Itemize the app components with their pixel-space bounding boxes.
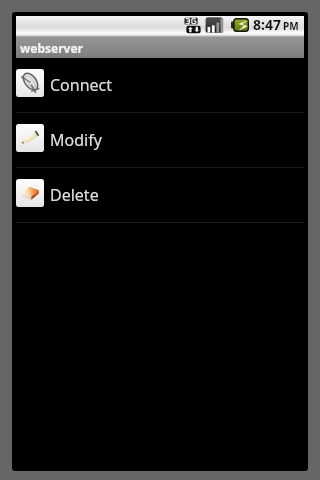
staticText: Delete [50, 184, 99, 206]
button[interactable]: Delete [16, 168, 304, 222]
button[interactable]: Modify [16, 113, 304, 167]
staticText: Modify [50, 129, 102, 151]
staticText: 8:47 [253, 15, 281, 34]
staticText: PM [283, 19, 299, 33]
staticText: Connect [50, 74, 113, 96]
button[interactable]: Connect [16, 58, 304, 112]
staticText: webserver [20, 40, 83, 56]
